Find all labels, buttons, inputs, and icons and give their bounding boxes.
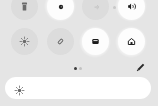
button[interactable]: Do not disturb: [47, 0, 74, 20]
button[interactable]: Cast: [82, 0, 109, 20]
button[interactable]: Sound: [118, 0, 145, 20]
button[interactable]: Auto rotate: [47, 28, 74, 55]
button[interactable]: Auto brightness: [11, 28, 38, 55]
button[interactable]: Edit: [135, 62, 146, 73]
button[interactable]: Screen record: [82, 28, 109, 55]
button[interactable]: Brightness: [5, 77, 151, 99]
button[interactable]: Home controls: [118, 28, 145, 55]
button[interactable]: Flashlight: [11, 0, 38, 20]
